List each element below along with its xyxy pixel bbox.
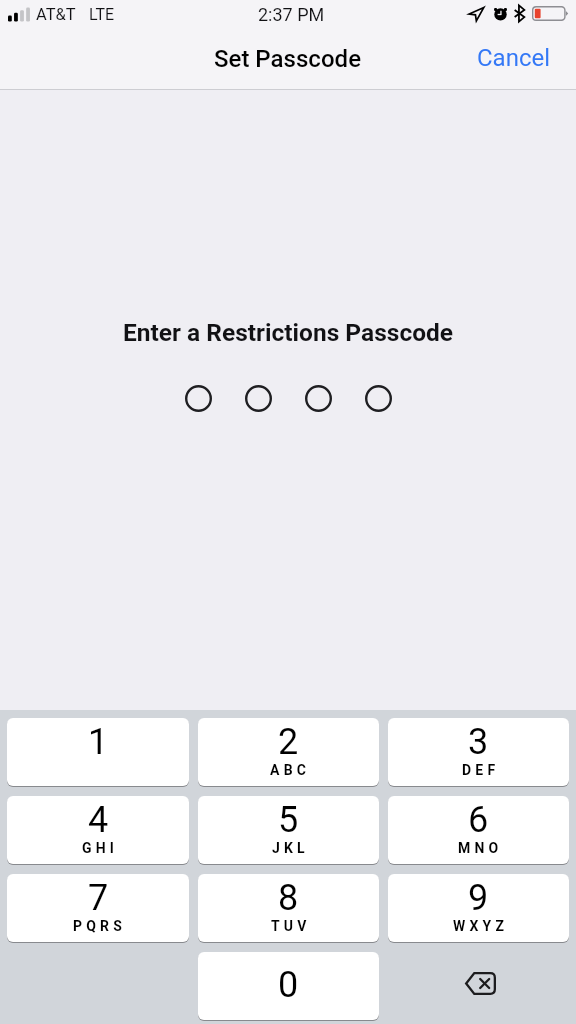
button[interactable]: 4 <box>7 796 189 864</box>
staticText: TUV <box>271 918 311 934</box>
button[interactable]: 3 <box>388 718 569 786</box>
button[interactable]: Delete <box>388 952 569 1020</box>
staticText: 2:37 PM <box>258 4 325 25</box>
staticText: DEF <box>462 762 500 778</box>
button[interactable]: Cancel <box>449 34 576 86</box>
staticText: 7 <box>88 877 109 919</box>
staticText: 6 <box>468 799 489 841</box>
staticText: PQRS <box>73 918 127 934</box>
button[interactable]: 9 <box>388 874 569 942</box>
staticText: Cancel <box>477 44 551 72</box>
staticText: 2 <box>278 721 299 763</box>
button[interactable]: 1 <box>7 718 189 786</box>
staticText: Set Passcode <box>214 45 362 73</box>
staticText: LTE <box>89 5 115 24</box>
staticText: WXYZ <box>453 918 509 934</box>
button[interactable]: 7 <box>7 874 189 942</box>
button[interactable]: 6 <box>388 796 569 864</box>
staticText: AT&T <box>36 5 76 24</box>
staticText: 5 <box>278 799 299 841</box>
staticText: Enter a Restrictions Passcode <box>123 318 454 347</box>
staticText: 3 <box>468 721 489 763</box>
staticText: 0 <box>278 964 299 1006</box>
staticText: 9 <box>468 877 489 919</box>
staticText: 8 <box>278 877 299 919</box>
staticText: ABC <box>270 762 311 778</box>
staticText: JKL <box>272 840 309 856</box>
staticText: MNO <box>458 840 503 856</box>
staticText: GHI <box>82 840 119 856</box>
button[interactable]: 8 <box>198 874 379 942</box>
button[interactable]: 5 <box>198 796 379 864</box>
staticText: 4 <box>88 799 109 841</box>
button[interactable]: 0 <box>198 952 379 1020</box>
button[interactable]: 2 <box>198 718 379 786</box>
staticText: 1 <box>88 721 109 763</box>
